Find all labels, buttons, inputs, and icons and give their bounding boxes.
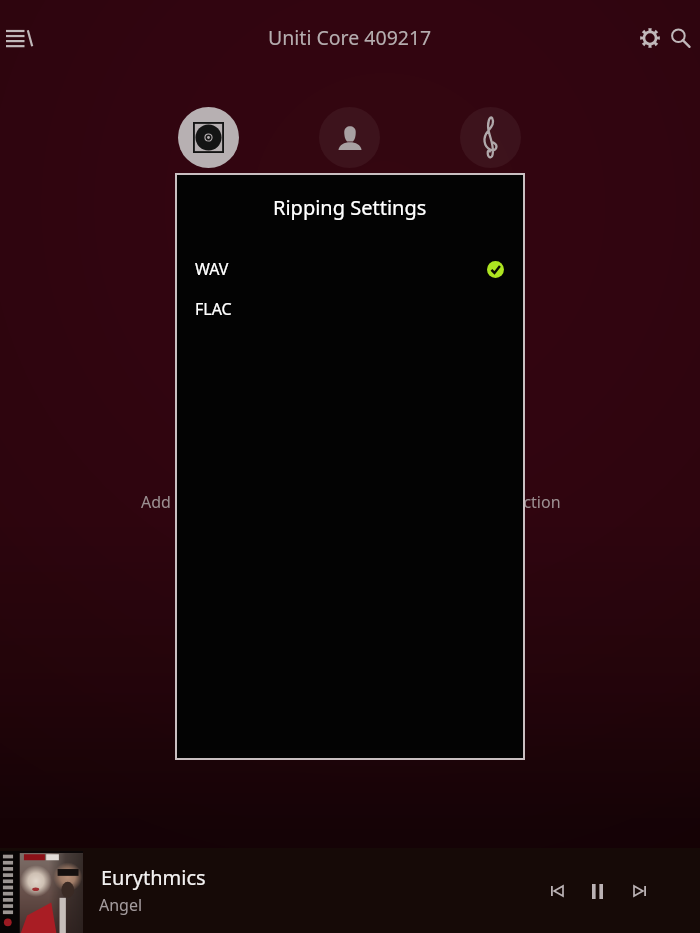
button[interactable]: Previous bbox=[536, 872, 577, 910]
staticText: Uniti Core 409217 bbox=[268, 24, 432, 51]
button[interactable]: Search bbox=[660, 18, 700, 58]
button[interactable]: Albums bbox=[178, 107, 239, 168]
button[interactable]: FLAC bbox=[175, 289, 525, 329]
staticText: Eurythmics bbox=[101, 864, 206, 891]
button[interactable]: Settings bbox=[630, 18, 670, 58]
staticText: FLAC bbox=[195, 298, 232, 320]
button[interactable]: WAV bbox=[175, 249, 525, 289]
button[interactable]: Artists bbox=[319, 107, 380, 168]
button[interactable]: Next bbox=[619, 872, 660, 910]
button[interactable]: Pause bbox=[577, 872, 618, 910]
staticText: WAV bbox=[195, 258, 229, 280]
staticText: Add music to the Core by ripping a CD to… bbox=[141, 491, 561, 513]
button[interactable]: Playlist bbox=[0, 19, 47, 67]
staticText: Ripping Settings bbox=[273, 194, 427, 221]
button[interactable]: Composers bbox=[460, 107, 521, 168]
staticText: Angel bbox=[99, 894, 143, 916]
